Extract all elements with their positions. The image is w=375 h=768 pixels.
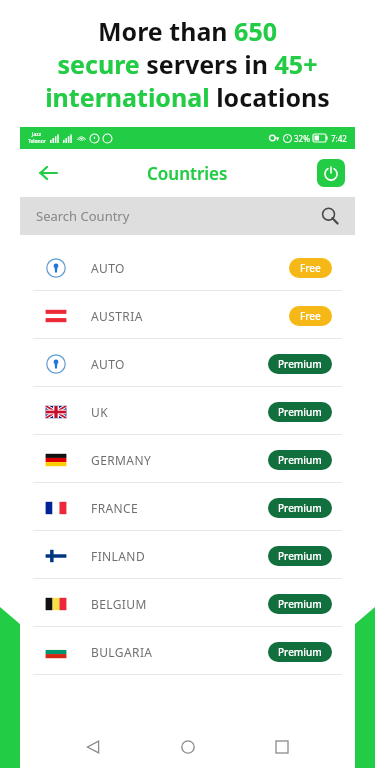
button[interactable]: GERMANY (29, 437, 346, 483)
staticText: UK (91, 404, 109, 420)
staticText: Jazz (32, 131, 42, 138)
button[interactable]: FINLAND (29, 533, 346, 579)
staticText: Countries (147, 162, 228, 185)
staticText: Telenor (28, 138, 46, 145)
button[interactable]: BELGIUM (29, 581, 346, 627)
staticText: Premium (278, 597, 322, 611)
staticText: AUTO (91, 356, 125, 372)
button[interactable]: Premium (268, 642, 332, 662)
staticText: Premium (278, 453, 322, 467)
staticText: Premium (278, 357, 322, 371)
button[interactable]: Search Country (20, 197, 355, 235)
staticText: Search Country (36, 207, 130, 225)
button[interactable]: Premium (268, 402, 332, 422)
button[interactable]: Premium (268, 354, 332, 374)
staticText: GERMANY (91, 452, 152, 468)
button[interactable]: AUTO (29, 245, 346, 291)
button[interactable]: Recent apps (260, 726, 304, 768)
staticText: Premium (278, 549, 322, 563)
button[interactable]: BULGARIA (29, 629, 346, 675)
button[interactable]: Free (289, 258, 332, 278)
staticText: More than 650 secure servers in 45+ inte… (14, 14, 361, 114)
button[interactable]: Back (71, 726, 115, 768)
staticText: Free (300, 261, 321, 275)
button[interactable]: Premium (268, 450, 332, 470)
staticText: FINLAND (91, 548, 146, 564)
staticText: 7:42 (331, 133, 347, 144)
staticText: FRANCE (91, 500, 139, 516)
staticText: Free (300, 309, 321, 323)
button[interactable]: AUTO (29, 341, 346, 387)
staticText: BELGIUM (91, 596, 147, 612)
button[interactable]: Free (289, 306, 332, 326)
staticText: 32% (294, 133, 310, 144)
button[interactable]: Back (28, 153, 68, 193)
staticText: AUTO (91, 260, 125, 276)
staticText: BULGARIA (91, 644, 153, 660)
staticText: Premium (278, 501, 322, 515)
button[interactable]: AUSTRIA (29, 293, 346, 339)
button[interactable]: Power / Connect (317, 159, 345, 187)
button[interactable]: Home (166, 726, 210, 768)
staticText: Premium (278, 405, 322, 419)
button[interactable]: UK (29, 389, 346, 435)
staticText: Premium (278, 645, 322, 659)
staticText: AUSTRIA (91, 308, 143, 324)
button[interactable]: Premium (268, 546, 332, 566)
button[interactable]: Premium (268, 498, 332, 518)
button[interactable]: FRANCE (29, 485, 346, 531)
button[interactable]: Premium (268, 594, 332, 614)
